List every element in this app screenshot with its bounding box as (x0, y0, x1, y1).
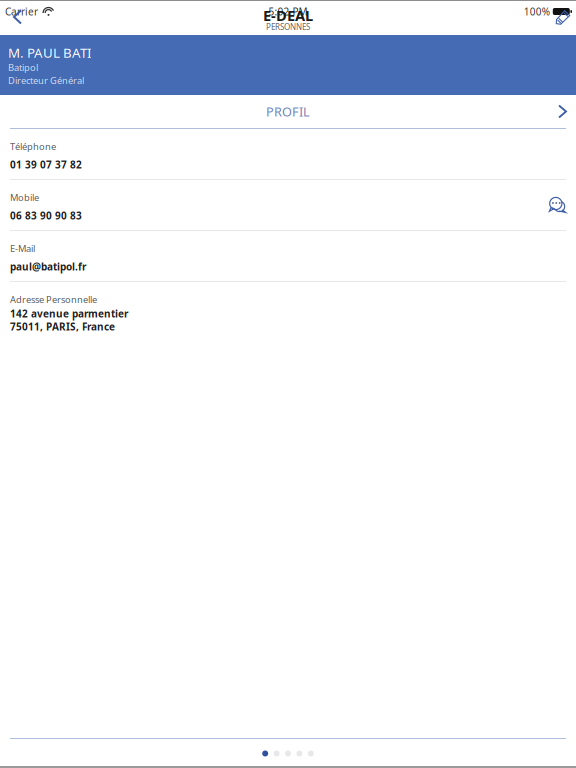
staticText: Carrier (5, 5, 38, 18)
staticText: M. PAUL BATI (8, 43, 92, 62)
staticText: Adresse Personnelle (10, 293, 97, 306)
staticText: PROFIL (266, 103, 310, 120)
staticText: E-Mail (10, 242, 35, 255)
staticText: 01 39 07 37 82 (10, 158, 82, 171)
staticText: 06 83 90 90 83 (10, 209, 82, 222)
staticText: 100% (524, 5, 550, 18)
staticText: PERSONNES (266, 21, 310, 32)
staticText: 5:02 PM (268, 5, 307, 18)
staticText: 142 avenue parmentier (10, 307, 128, 320)
button[interactable]: Back (0, 3, 33, 31)
button[interactable]: PROFIL (0, 95, 576, 128)
staticText: paul@batipol.fr (10, 260, 86, 273)
staticText: Directeur Général (8, 74, 84, 87)
staticText: Batipol (8, 61, 38, 74)
button[interactable]: Edit (548, 7, 576, 27)
staticText: Téléphone (10, 140, 56, 153)
staticText: Mobile (10, 191, 39, 204)
staticText: E-DEAL (263, 5, 313, 25)
button[interactable]: Send message (541, 187, 576, 214)
staticText: 75011, PARIS, France (10, 320, 115, 333)
